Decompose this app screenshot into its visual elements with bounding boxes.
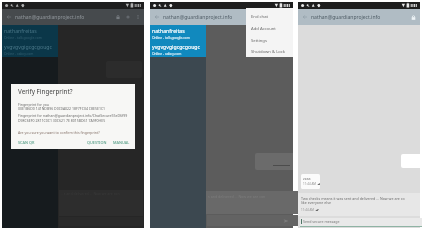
staticText: nathan@guardianproject.info bbox=[311, 14, 381, 21]
button[interactable]: Encryption lock bbox=[114, 13, 122, 21]
button[interactable]: Encryption lock bbox=[409, 13, 418, 22]
staticText: Are you sure you want to confirm this fi… bbox=[18, 130, 100, 135]
button[interactable] bbox=[255, 153, 293, 170]
button[interactable]: Send secure message bbox=[300, 218, 422, 226]
button[interactable]: Back bbox=[301, 13, 309, 21]
staticText: 11:44 AM bbox=[303, 182, 317, 186]
staticText: Online - xabcy.com bbox=[4, 51, 34, 55]
staticText: Fingerprint for you bbox=[18, 102, 50, 107]
button[interactable]: SCAN QR bbox=[17, 139, 36, 146]
staticText: 00E1B6D0 141NDB96 D0C0A022 18F7FC04 C8E5… bbox=[18, 106, 106, 111]
staticText: yvgvgvgigcgcgougc bbox=[4, 43, 53, 50]
button[interactable]: QUESTION bbox=[86, 139, 108, 146]
staticText: Add Account bbox=[251, 26, 276, 32]
staticText: Online - talk.google.com bbox=[4, 35, 42, 39]
staticText: Verify Fingerprint? bbox=[18, 87, 73, 95]
button[interactable]: yvgvgvgigcgcgougc bbox=[150, 41, 206, 57]
button[interactable]: Back bbox=[5, 13, 13, 21]
staticText: 11:44 AM bbox=[301, 208, 315, 212]
button[interactable]: Settings bbox=[246, 35, 293, 47]
staticText: nathanfreitas bbox=[4, 27, 37, 34]
staticText: End chat bbox=[251, 14, 269, 20]
staticText: MANUAL bbox=[113, 140, 130, 145]
button[interactable]: End chat bbox=[246, 11, 293, 23]
button[interactable]: s and delivered ... Now we are con bbox=[206, 191, 349, 214]
staticText: SCAN QR bbox=[18, 140, 35, 145]
button[interactable]: MANUAL bbox=[112, 139, 131, 146]
button[interactable]: nathanfreitas bbox=[150, 25, 206, 41]
staticText: Two checks means it was sent and deliver… bbox=[301, 196, 405, 206]
staticText: D98C6EF0 2811C0C1 30C621 7E 8015BD61 7A9… bbox=[18, 118, 106, 123]
staticText: Online - xabcy.com bbox=[152, 51, 182, 55]
button[interactable]: Two checks means it was sent and deliver… bbox=[298, 193, 420, 216]
staticText: nathanfreitas bbox=[152, 27, 185, 34]
staticText: Send secure message bbox=[303, 219, 340, 224]
button[interactable]: nathanfreitas bbox=[2, 25, 58, 41]
staticText: Shutdown & Lock bbox=[251, 49, 286, 55]
staticText: Settings bbox=[251, 38, 267, 44]
staticText: zzaa bbox=[303, 176, 311, 181]
staticText: yvgvgvgigcgcgougc bbox=[152, 43, 201, 50]
button[interactable]: Add Account bbox=[246, 23, 293, 35]
button[interactable]: Back bbox=[153, 13, 161, 21]
button[interactable]: zzaa bbox=[301, 174, 320, 189]
button[interactable]: Shutdown & Lock bbox=[246, 47, 293, 57]
staticText: s and delivered ... Now we are con bbox=[208, 194, 266, 199]
staticText: QUESTION bbox=[87, 140, 107, 145]
staticText: nathan@guardianproject.info bbox=[15, 14, 85, 21]
button[interactable] bbox=[207, 215, 350, 226]
button[interactable]: Call bbox=[124, 13, 132, 21]
button[interactable]: yvgvgvgigcgcgougc bbox=[2, 41, 58, 57]
staticText: nathan@guardianproject.info bbox=[163, 14, 233, 21]
staticText: Fingerprint for nathan@guardianproject.i… bbox=[18, 113, 128, 118]
button[interactable]: More options bbox=[134, 13, 142, 21]
staticText: Online - talk.google.com bbox=[152, 35, 190, 39]
